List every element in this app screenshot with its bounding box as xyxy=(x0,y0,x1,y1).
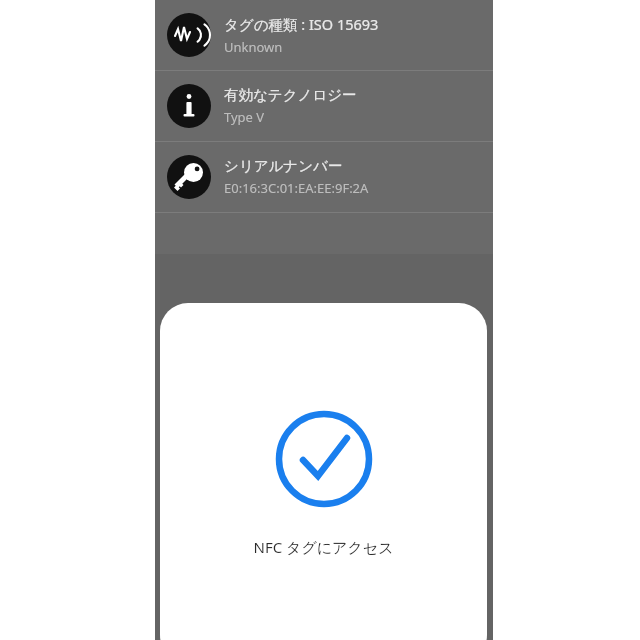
button[interactable]: 有効なテクノロジー xyxy=(155,71,493,141)
staticText: タグの種類 : ISO 15693 xyxy=(224,14,379,34)
staticText: シリアルナンバー xyxy=(224,157,343,175)
staticText: E0:16:3C:01:EA:EE:9F:2A xyxy=(224,179,369,197)
button[interactable]: タグの種類 : ISO 15693 xyxy=(155,0,493,70)
staticText: Type V xyxy=(224,108,265,126)
other: Success xyxy=(274,409,374,509)
staticText: NFC タグにアクセス xyxy=(253,537,394,557)
staticText: 有効なテクノロジー xyxy=(224,86,357,104)
button[interactable]: シリアルナンバー xyxy=(155,142,493,212)
staticText: Unknown xyxy=(224,38,283,56)
button[interactable]: Success xyxy=(160,303,487,640)
